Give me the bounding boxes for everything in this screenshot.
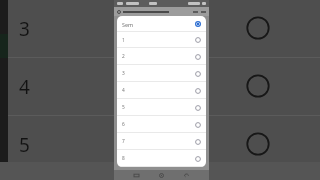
staticText: 5: [19, 132, 30, 158]
staticText: Sem: [122, 21, 134, 28]
button[interactable]: 4: [117, 82, 206, 99]
staticText: 6: [122, 121, 125, 128]
other: Option: [195, 71, 201, 77]
staticText: 2: [122, 53, 125, 60]
staticText: 1: [122, 37, 125, 44]
button[interactable]: 3: [8, 0, 320, 58]
button[interactable]: 4: [8, 58, 320, 116]
button[interactable]: 5: [117, 99, 206, 116]
button[interactable]: 7: [117, 133, 206, 150]
staticText: 5: [122, 104, 125, 111]
button[interactable]: 8: [117, 150, 206, 167]
other: Option: [195, 105, 201, 111]
other: Option: [195, 156, 201, 162]
staticText: 3: [122, 70, 125, 77]
button[interactable]: 3: [117, 65, 206, 82]
button[interactable]: 6: [117, 116, 206, 133]
other: Option: [195, 88, 201, 94]
staticText: 7: [122, 138, 125, 145]
button[interactable]: Back: [184, 173, 189, 178]
button[interactable]: 2: [117, 48, 206, 65]
other: Option: [195, 122, 201, 128]
staticText: 4: [19, 74, 30, 100]
button[interactable]: Sem: [117, 16, 206, 32]
staticText: 3: [19, 16, 30, 42]
button[interactable]: 1: [117, 32, 206, 48]
button[interactable]: Recents: [134, 173, 139, 178]
staticText: 8: [122, 155, 125, 162]
other: Selected option: [195, 21, 201, 27]
button[interactable]: Home: [159, 173, 164, 178]
staticText: 4: [122, 87, 125, 94]
other: Option: [195, 139, 201, 145]
other: Option: [195, 37, 201, 43]
other: Option: [195, 54, 201, 60]
button[interactable]: 5: [8, 116, 320, 174]
